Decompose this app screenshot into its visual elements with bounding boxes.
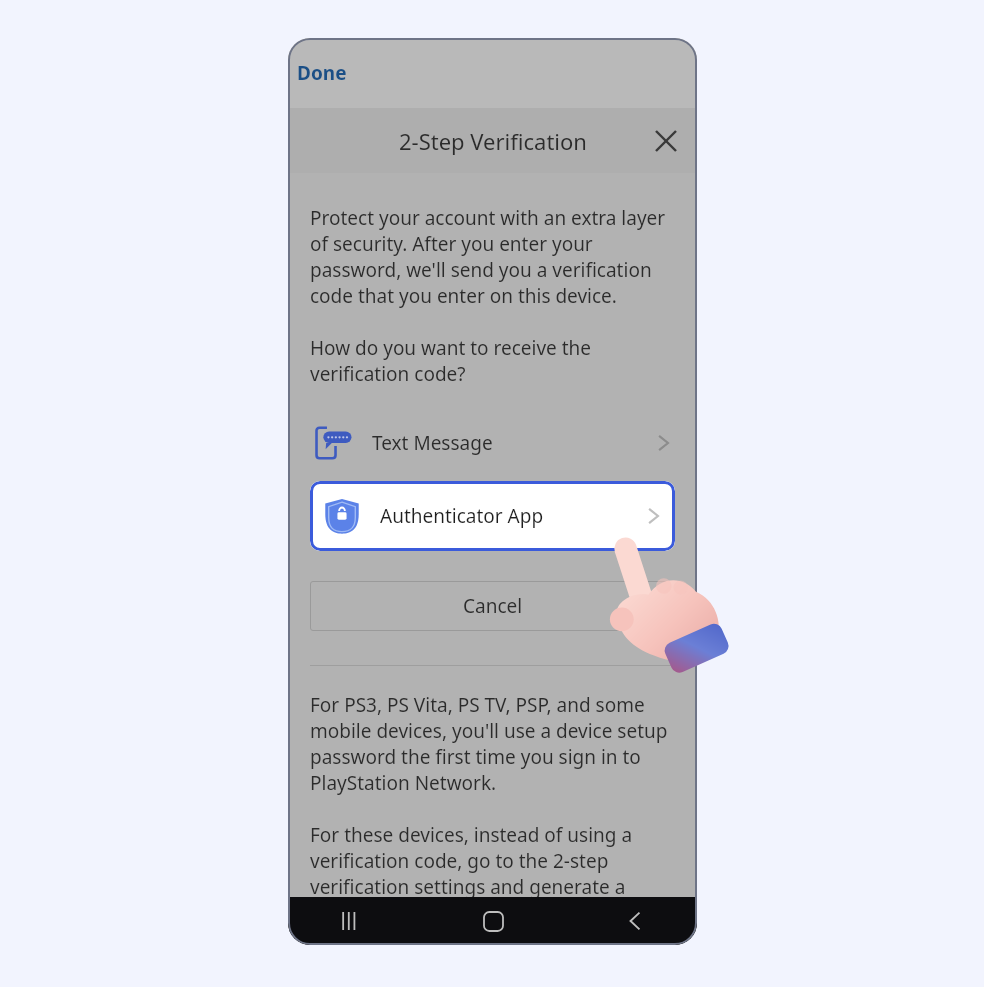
staticText: How do you want to receive the verificat… [310,335,675,387]
button[interactable]: Recent apps [328,899,372,943]
staticText: Protect your account with an extra layer… [310,205,675,309]
staticText: Text Message [372,430,493,456]
staticText: Authenticator App [380,503,544,529]
button[interactable]: Done [293,54,351,92]
staticText: Cancel [463,593,523,619]
button[interactable]: Authenticator App [310,481,675,551]
button[interactable]: Close [645,120,687,162]
staticText: 2-Step Verification [399,126,587,156]
staticText: For these devices, instead of using a ve… [310,822,675,897]
staticText: For PS3, PS Vita, PS TV, PSP, and some m… [310,692,675,796]
button[interactable]: Text Message [310,415,675,471]
button[interactable]: Cancel [310,581,675,631]
button[interactable]: Back [613,899,657,943]
staticText: Done [297,60,347,86]
button[interactable]: Home [471,899,515,943]
